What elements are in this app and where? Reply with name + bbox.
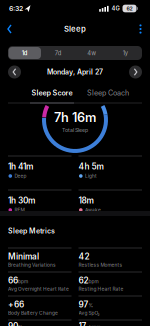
- button[interactable]: 4w: [75, 46, 108, 60]
- staticText: 4G: [111, 5, 119, 12]
- staticText: 42: [78, 251, 89, 261]
- staticText: 97: [78, 299, 88, 309]
- staticText: Breathing Variations: [8, 262, 56, 268]
- staticText: Sleep Coach: [87, 89, 129, 97]
- staticText: brpm: [88, 324, 100, 326]
- staticText: 1h 41m: [8, 161, 33, 171]
- staticText: 7h 16m: [54, 110, 96, 125]
- staticText: Deep: [14, 173, 26, 179]
- staticText: 17: [78, 321, 86, 326]
- staticText: %: [18, 324, 23, 326]
- staticText: %: [88, 303, 93, 308]
- staticText: Avg SpO₂: [78, 310, 99, 316]
- button[interactable]: 1y: [109, 46, 142, 60]
- staticText: Resting Heart Rate: [78, 286, 123, 292]
- staticText: Body Battery Change: [8, 310, 58, 316]
- staticText: 1h 30m: [8, 195, 35, 205]
- staticText: 1y: [123, 49, 128, 57]
- staticText: 66: [8, 275, 18, 285]
- staticText: Avg Overnight Heart Rate: [8, 286, 69, 292]
- button[interactable]: Next day: [129, 65, 142, 78]
- button[interactable]: 1d: [8, 46, 41, 60]
- staticText: REM: [14, 207, 24, 213]
- button[interactable]: More options: [132, 19, 148, 39]
- staticText: bpm: [88, 279, 98, 284]
- staticText: 1d: [22, 49, 28, 57]
- staticText: 4h 5m: [78, 161, 103, 171]
- staticText: 6:32: [9, 4, 23, 13]
- staticText: +66: [8, 299, 24, 309]
- staticText: Monday, April 27: [47, 68, 103, 76]
- staticText: Sleep Score: [31, 89, 72, 97]
- staticText: bpm: [18, 279, 28, 284]
- staticText: Minimal: [8, 251, 39, 261]
- staticText: 90: [8, 321, 18, 326]
- staticText: Light: [85, 173, 97, 179]
- staticText: 18m: [78, 195, 93, 205]
- staticText: Total Sleep: [62, 127, 88, 133]
- staticText: 62: [126, 5, 132, 12]
- staticText: 62: [78, 275, 88, 285]
- button[interactable]: Sleep Coach: [73, 85, 143, 101]
- button[interactable]: Previous day: [8, 65, 21, 78]
- staticText: 4w: [87, 49, 96, 57]
- staticText: Sleep: [64, 24, 86, 34]
- staticText: Awake: [85, 207, 101, 213]
- button[interactable]: Back: [1, 19, 17, 39]
- staticText: Restless Moments: [78, 262, 122, 268]
- button[interactable]: Sleep Score: [17, 85, 87, 101]
- staticText: Sleep Metrics: [8, 227, 55, 235]
- staticText: 7d: [55, 49, 62, 57]
- button[interactable]: 7d: [42, 46, 75, 60]
